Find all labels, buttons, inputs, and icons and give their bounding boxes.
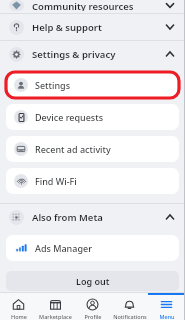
- button[interactable]: Ads Manager: [6, 235, 179, 261]
- staticText: Profile: [84, 313, 102, 320]
- staticText: Settings & privacy: [32, 48, 116, 61]
- button[interactable]: Settings & privacy: [0, 41, 185, 67]
- button[interactable]: Marketplace: [37, 293, 74, 320]
- staticText: Also from Meta: [32, 211, 103, 224]
- button[interactable]: Settings: [6, 72, 179, 98]
- button[interactable]: Notifications: [111, 293, 148, 320]
- staticText: Find Wi-Fi: [35, 175, 77, 187]
- staticText: Notifications: [113, 313, 147, 320]
- button[interactable]: Home: [0, 293, 37, 320]
- staticText: Recent ad activity: [35, 143, 111, 155]
- button[interactable]: Profile: [74, 293, 111, 320]
- button[interactable]: Also from Meta: [0, 204, 185, 230]
- staticText: Ads Manager: [35, 242, 92, 254]
- staticText: Help & support: [32, 21, 102, 34]
- staticText: Settings: [35, 79, 71, 91]
- staticText: Menu: [159, 313, 175, 320]
- staticText: Home: [11, 313, 27, 320]
- button[interactable]: Help & support: [0, 14, 185, 40]
- staticText: Device requests: [35, 111, 104, 123]
- button[interactable]: Community resources: [0, 0, 185, 11]
- button[interactable]: Find Wi-Fi: [6, 168, 179, 194]
- staticText: Log out: [76, 275, 110, 287]
- button[interactable]: Menu: [148, 293, 185, 320]
- button[interactable]: Device requests: [6, 104, 179, 130]
- staticText: Marketplace: [39, 313, 72, 320]
- button[interactable]: Recent ad activity: [6, 136, 179, 162]
- button[interactable]: Log out: [6, 271, 179, 291]
- staticText: Community resources: [32, 0, 134, 11]
